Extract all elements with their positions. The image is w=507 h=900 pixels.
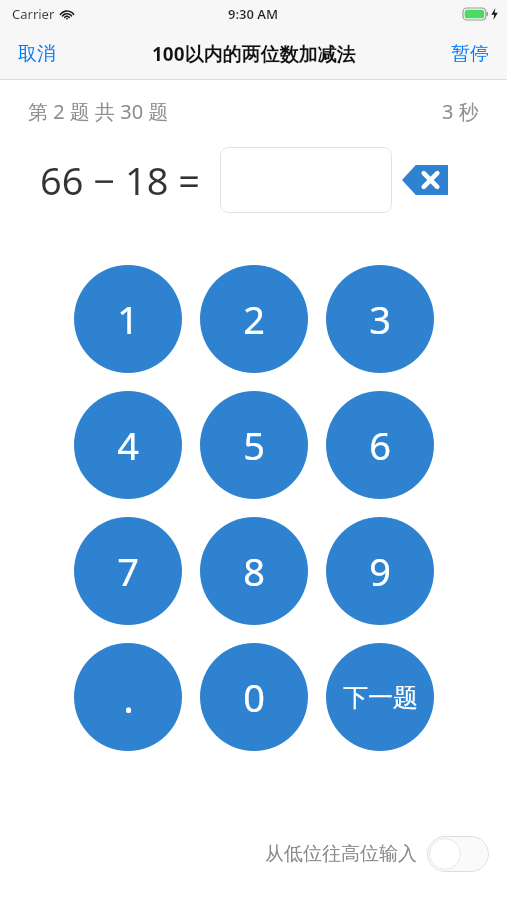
- staticText: 下一题: [343, 682, 418, 713]
- staticText: 4: [117, 419, 139, 471]
- staticText: 6: [369, 419, 391, 471]
- staticText: 1: [117, 293, 139, 345]
- staticText: 第 2 题 共 30 题: [28, 98, 169, 125]
- button[interactable]: 暂停: [433, 32, 507, 76]
- staticText: 从低位往高位输入: [265, 842, 417, 866]
- button[interactable]: 3: [326, 265, 434, 373]
- button[interactable]: 6: [326, 391, 434, 499]
- staticText: .: [123, 670, 134, 724]
- staticText: 100以内的两位数加减法: [152, 41, 356, 67]
- staticText: 3 秒: [442, 98, 479, 125]
- button[interactable]: 从低位往高位输入: [261, 830, 493, 878]
- staticText: 9:30 AM: [228, 5, 279, 23]
- button[interactable]: Backspace: [402, 163, 448, 197]
- button[interactable]: 7: [74, 517, 182, 625]
- button[interactable]: 5: [200, 391, 308, 499]
- button[interactable]: [220, 147, 392, 213]
- button[interactable]: 取消: [0, 32, 74, 76]
- staticText: 0: [243, 671, 265, 723]
- staticText: 2: [243, 293, 265, 345]
- staticText: 5: [243, 419, 265, 471]
- button[interactable]: 9: [326, 517, 434, 625]
- button[interactable]: 4: [74, 391, 182, 499]
- staticText: Carrier: [12, 5, 55, 23]
- staticText: 取消: [18, 42, 56, 66]
- staticText: 7: [117, 545, 139, 597]
- staticText: 暂停: [451, 42, 489, 66]
- button[interactable]: 1: [74, 265, 182, 373]
- staticText: 9: [369, 545, 391, 597]
- button[interactable]: 下一题: [326, 643, 434, 751]
- button[interactable]: 0: [200, 643, 308, 751]
- staticText: 3: [369, 293, 391, 345]
- staticText: 8: [243, 545, 265, 597]
- button[interactable]: .: [74, 643, 182, 751]
- button[interactable]: 2: [200, 265, 308, 373]
- button[interactable]: 8: [200, 517, 308, 625]
- staticText: 66 − 18 =: [40, 154, 201, 206]
